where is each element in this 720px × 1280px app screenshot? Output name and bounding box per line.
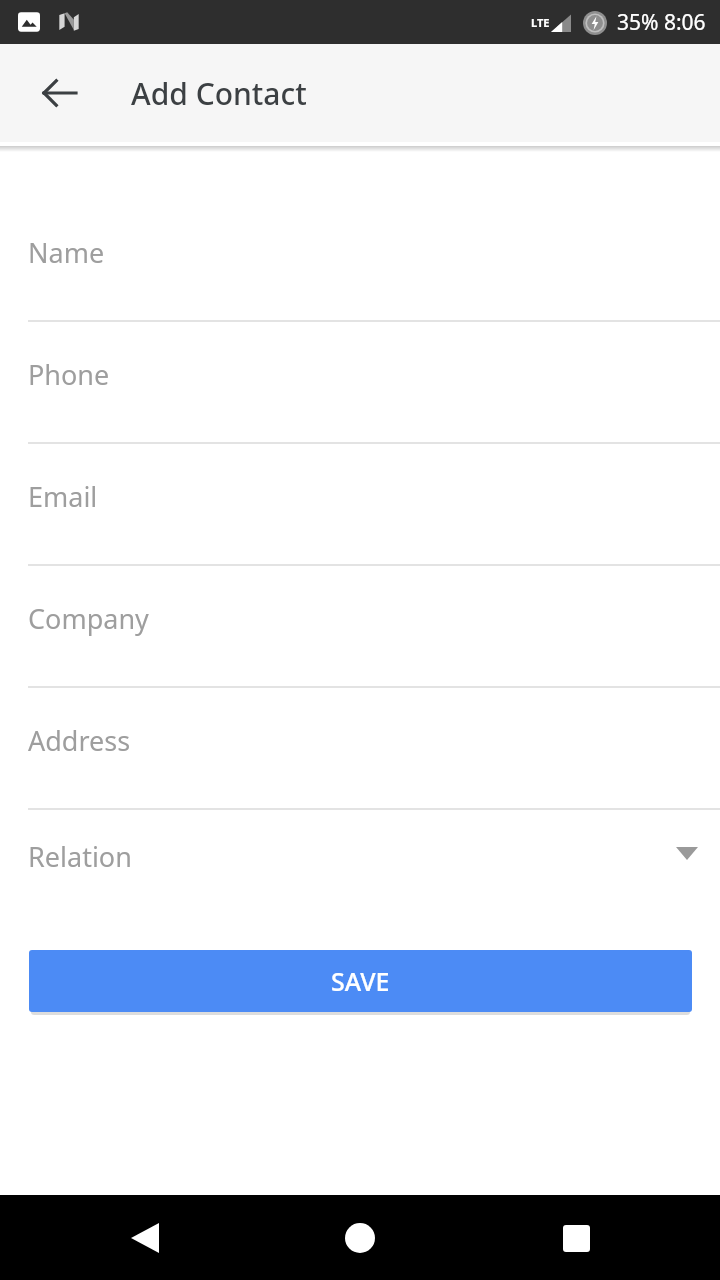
staticText: Phone xyxy=(28,356,110,393)
staticText: Add Contact xyxy=(131,73,307,114)
staticText: Address xyxy=(28,722,131,759)
button[interactable]: Name xyxy=(0,200,720,322)
button[interactable]: Phone xyxy=(0,322,720,444)
button[interactable]: Back xyxy=(105,1198,185,1278)
button[interactable]: Recent apps xyxy=(536,1198,616,1278)
button[interactable]: Relation xyxy=(0,810,720,898)
staticText: Email xyxy=(28,478,98,515)
staticText: Relation xyxy=(28,838,132,875)
button[interactable]: Back xyxy=(28,62,90,124)
staticText: 35% 8:06 xyxy=(617,8,706,37)
button[interactable]: Address xyxy=(0,688,720,810)
staticText: Name xyxy=(28,234,105,271)
button[interactable]: Email xyxy=(0,444,720,566)
staticText: LTE xyxy=(531,15,550,30)
staticText: SAVE xyxy=(331,964,390,998)
staticText: Company xyxy=(28,600,149,637)
button[interactable]: SAVE xyxy=(29,950,692,1012)
button[interactable]: Home xyxy=(320,1198,400,1278)
button[interactable]: Company xyxy=(0,566,720,688)
